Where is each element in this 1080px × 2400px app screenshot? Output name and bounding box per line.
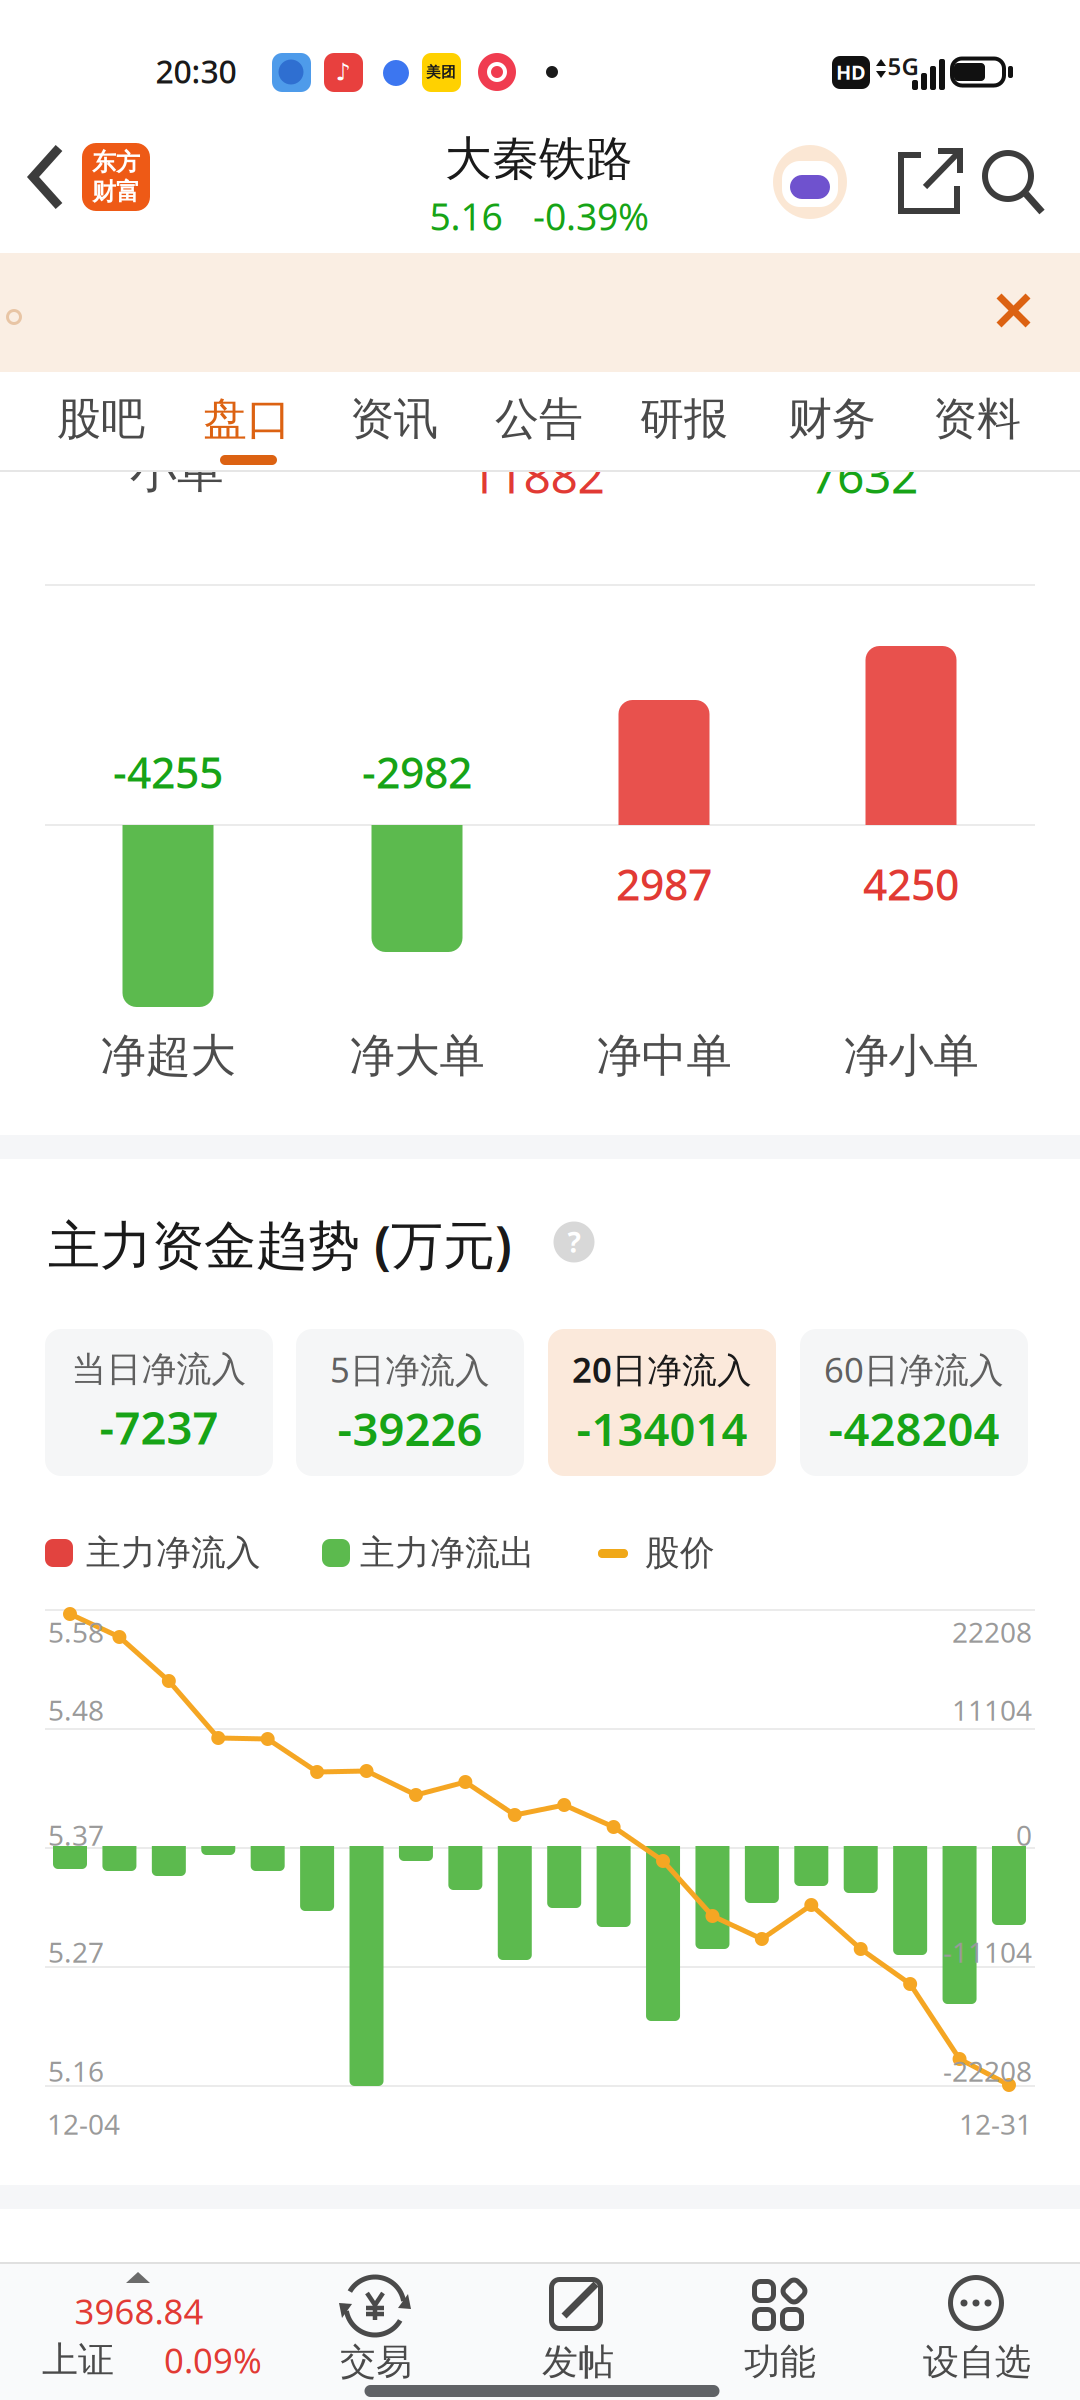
staticText: 财务 <box>788 392 876 446</box>
staticText: 3968.84 <box>74 2288 203 2334</box>
staticText: 5.48 <box>48 1691 104 1729</box>
staticText: -39226 <box>337 1398 482 1459</box>
staticText: -134014 <box>576 1398 747 1459</box>
staticText: -0.39% <box>533 191 649 241</box>
staticText: 美团 <box>426 63 456 81</box>
staticText: 净大单 <box>349 1028 484 1084</box>
staticText: 功能 <box>744 2340 816 2384</box>
button[interactable]: 5日净流入 <box>296 1329 524 1476</box>
button[interactable]: 分享 <box>889 142 969 222</box>
staticText: 5.27 <box>48 1933 104 1971</box>
button[interactable]: 东方财富 <box>82 143 150 211</box>
staticText: 发帖 <box>542 2340 614 2384</box>
staticText: 净超大 <box>100 1028 235 1084</box>
staticText: 5.37 <box>48 1816 104 1854</box>
staticText: 上证 <box>42 2338 114 2382</box>
staticText: 财富 <box>92 177 140 206</box>
staticText: 0.09% <box>164 2337 262 2383</box>
staticText: 20:30 <box>155 50 236 92</box>
staticText: -22208 <box>943 2052 1032 2090</box>
staticText: 主力净流出 <box>360 1532 535 1574</box>
button[interactable]: 3968.84 <box>10 2264 290 2400</box>
staticText: 5.16 <box>48 2052 104 2090</box>
staticText: HD <box>836 59 866 85</box>
button[interactable]: 交易 <box>295 2262 455 2398</box>
staticText: 主力资金趋势 (万元) <box>48 1209 512 1279</box>
button[interactable]: 搜索 <box>972 140 1052 220</box>
staticText: 5.16 <box>429 191 502 241</box>
staticText: 交易 <box>340 2340 412 2384</box>
staticText: 净中单 <box>596 1028 731 1084</box>
staticText: ? <box>567 1223 580 1261</box>
button[interactable]: 股吧 <box>41 375 161 463</box>
staticText: 4250 <box>863 856 959 912</box>
button[interactable]: 盘口 <box>187 375 307 463</box>
staticText: 小单 <box>130 442 224 500</box>
staticText: 60日净流入 <box>824 1346 1004 1392</box>
button[interactable]: 功能 <box>700 2262 860 2398</box>
staticText: 11104 <box>952 1691 1032 1729</box>
staticText: 公告 <box>495 392 583 446</box>
button[interactable]: 资料 <box>917 375 1037 463</box>
staticText: 5G <box>887 50 918 82</box>
staticText: 净小单 <box>843 1028 978 1084</box>
staticText: -428204 <box>828 1398 999 1459</box>
staticText: 2987 <box>616 856 712 912</box>
staticText: -2982 <box>362 744 472 800</box>
staticText: 5.58 <box>48 1613 104 1651</box>
staticText: 资讯 <box>350 392 438 446</box>
staticText: 设自选 <box>923 2340 1031 2384</box>
button[interactable]: 资讯 <box>334 375 454 463</box>
staticText: ♪ <box>335 58 350 86</box>
staticText: 盘口 <box>203 392 291 446</box>
staticText: 主力净流入 <box>86 1532 261 1574</box>
staticText: 0 <box>1016 1816 1032 1854</box>
staticText: 股价 <box>645 1532 715 1574</box>
staticText: 资料 <box>933 392 1021 446</box>
button[interactable]: 60日净流入 <box>800 1329 1028 1476</box>
button[interactable]: 研报 <box>624 375 744 463</box>
staticText: -11104 <box>943 1933 1032 1971</box>
button[interactable]: 20日净流入 <box>548 1329 776 1476</box>
staticText: 12-04 <box>47 2105 120 2143</box>
staticText: 东方 <box>92 147 140 177</box>
staticText: 当日净流入 <box>71 1348 246 1391</box>
staticText: -7237 <box>99 1397 218 1457</box>
button[interactable]: 发帖 <box>496 2262 656 2398</box>
staticText: 5日净流入 <box>330 1346 490 1392</box>
staticText: 股吧 <box>57 392 145 446</box>
staticText: 12-31 <box>959 2105 1032 2143</box>
staticText: -4255 <box>113 744 223 800</box>
staticText: 11882 <box>469 443 604 507</box>
button[interactable]: 返回 <box>11 132 83 222</box>
button[interactable]: 当日净流入 <box>45 1329 273 1476</box>
staticText: 22208 <box>952 1613 1032 1651</box>
staticText: 7632 <box>810 443 918 507</box>
staticText: 大秦铁路 <box>445 130 633 188</box>
button[interactable]: 说明 <box>553 1221 594 1262</box>
button[interactable]: 设自选 <box>892 2262 1062 2398</box>
button[interactable]: 财务 <box>772 375 892 463</box>
staticText: 研报 <box>640 392 728 446</box>
staticText: 20日净流入 <box>572 1346 752 1392</box>
button[interactable]: 关闭 <box>981 278 1045 342</box>
button[interactable]: 公告 <box>479 375 599 463</box>
button[interactable]: AI助手 <box>773 145 847 219</box>
